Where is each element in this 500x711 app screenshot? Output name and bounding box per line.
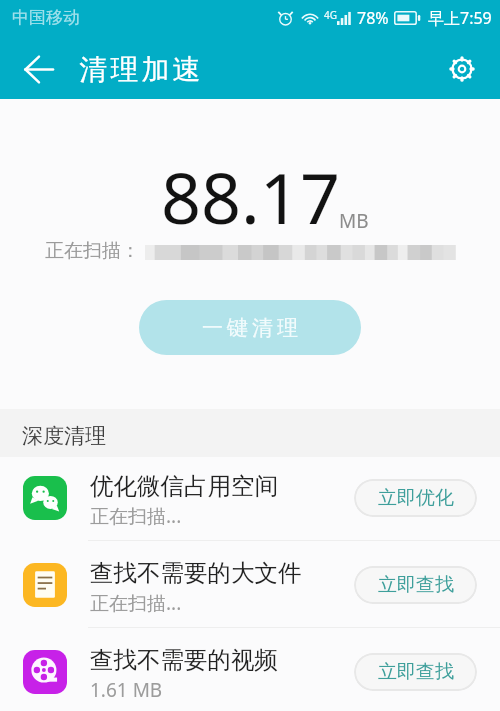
staticText: MB	[339, 208, 369, 234]
staticText: 早上7:59	[428, 7, 492, 29]
staticText: 88.17	[161, 149, 340, 244]
button[interactable]: 优化微信占用空间	[0, 454, 500, 541]
staticText: 优化微信占用空间	[90, 471, 278, 501]
staticText: 1.61 MB	[90, 677, 163, 703]
button[interactable]: 一键清理	[139, 300, 361, 355]
staticText: 清理加速	[78, 52, 202, 87]
staticText: 正在扫描：	[45, 239, 140, 263]
staticText: 一键清理	[200, 315, 300, 341]
button[interactable]: 立即优化	[354, 479, 477, 517]
staticText: 中国移动	[12, 7, 80, 28]
button[interactable]: Settings	[434, 41, 490, 97]
staticText: 深度清理	[22, 423, 106, 449]
staticText: 4G	[324, 8, 337, 22]
button[interactable]: 查找不需要的大文件	[0, 541, 500, 628]
staticText: 立即查找	[378, 660, 454, 684]
staticText: 查找不需要的大文件	[90, 558, 302, 588]
staticText: 查找不需要的视频	[90, 645, 278, 675]
staticText: 正在扫描...	[90, 503, 182, 529]
button[interactable]: 立即查找	[354, 653, 477, 691]
button[interactable]: Back	[11, 41, 67, 97]
button[interactable]: 立即查找	[354, 566, 477, 604]
staticText: 78%	[357, 7, 389, 29]
button[interactable]: 查找不需要的视频	[0, 628, 500, 711]
staticText: 立即优化	[378, 486, 454, 510]
staticText: 立即查找	[378, 573, 454, 597]
staticText: 正在扫描...	[90, 590, 182, 616]
